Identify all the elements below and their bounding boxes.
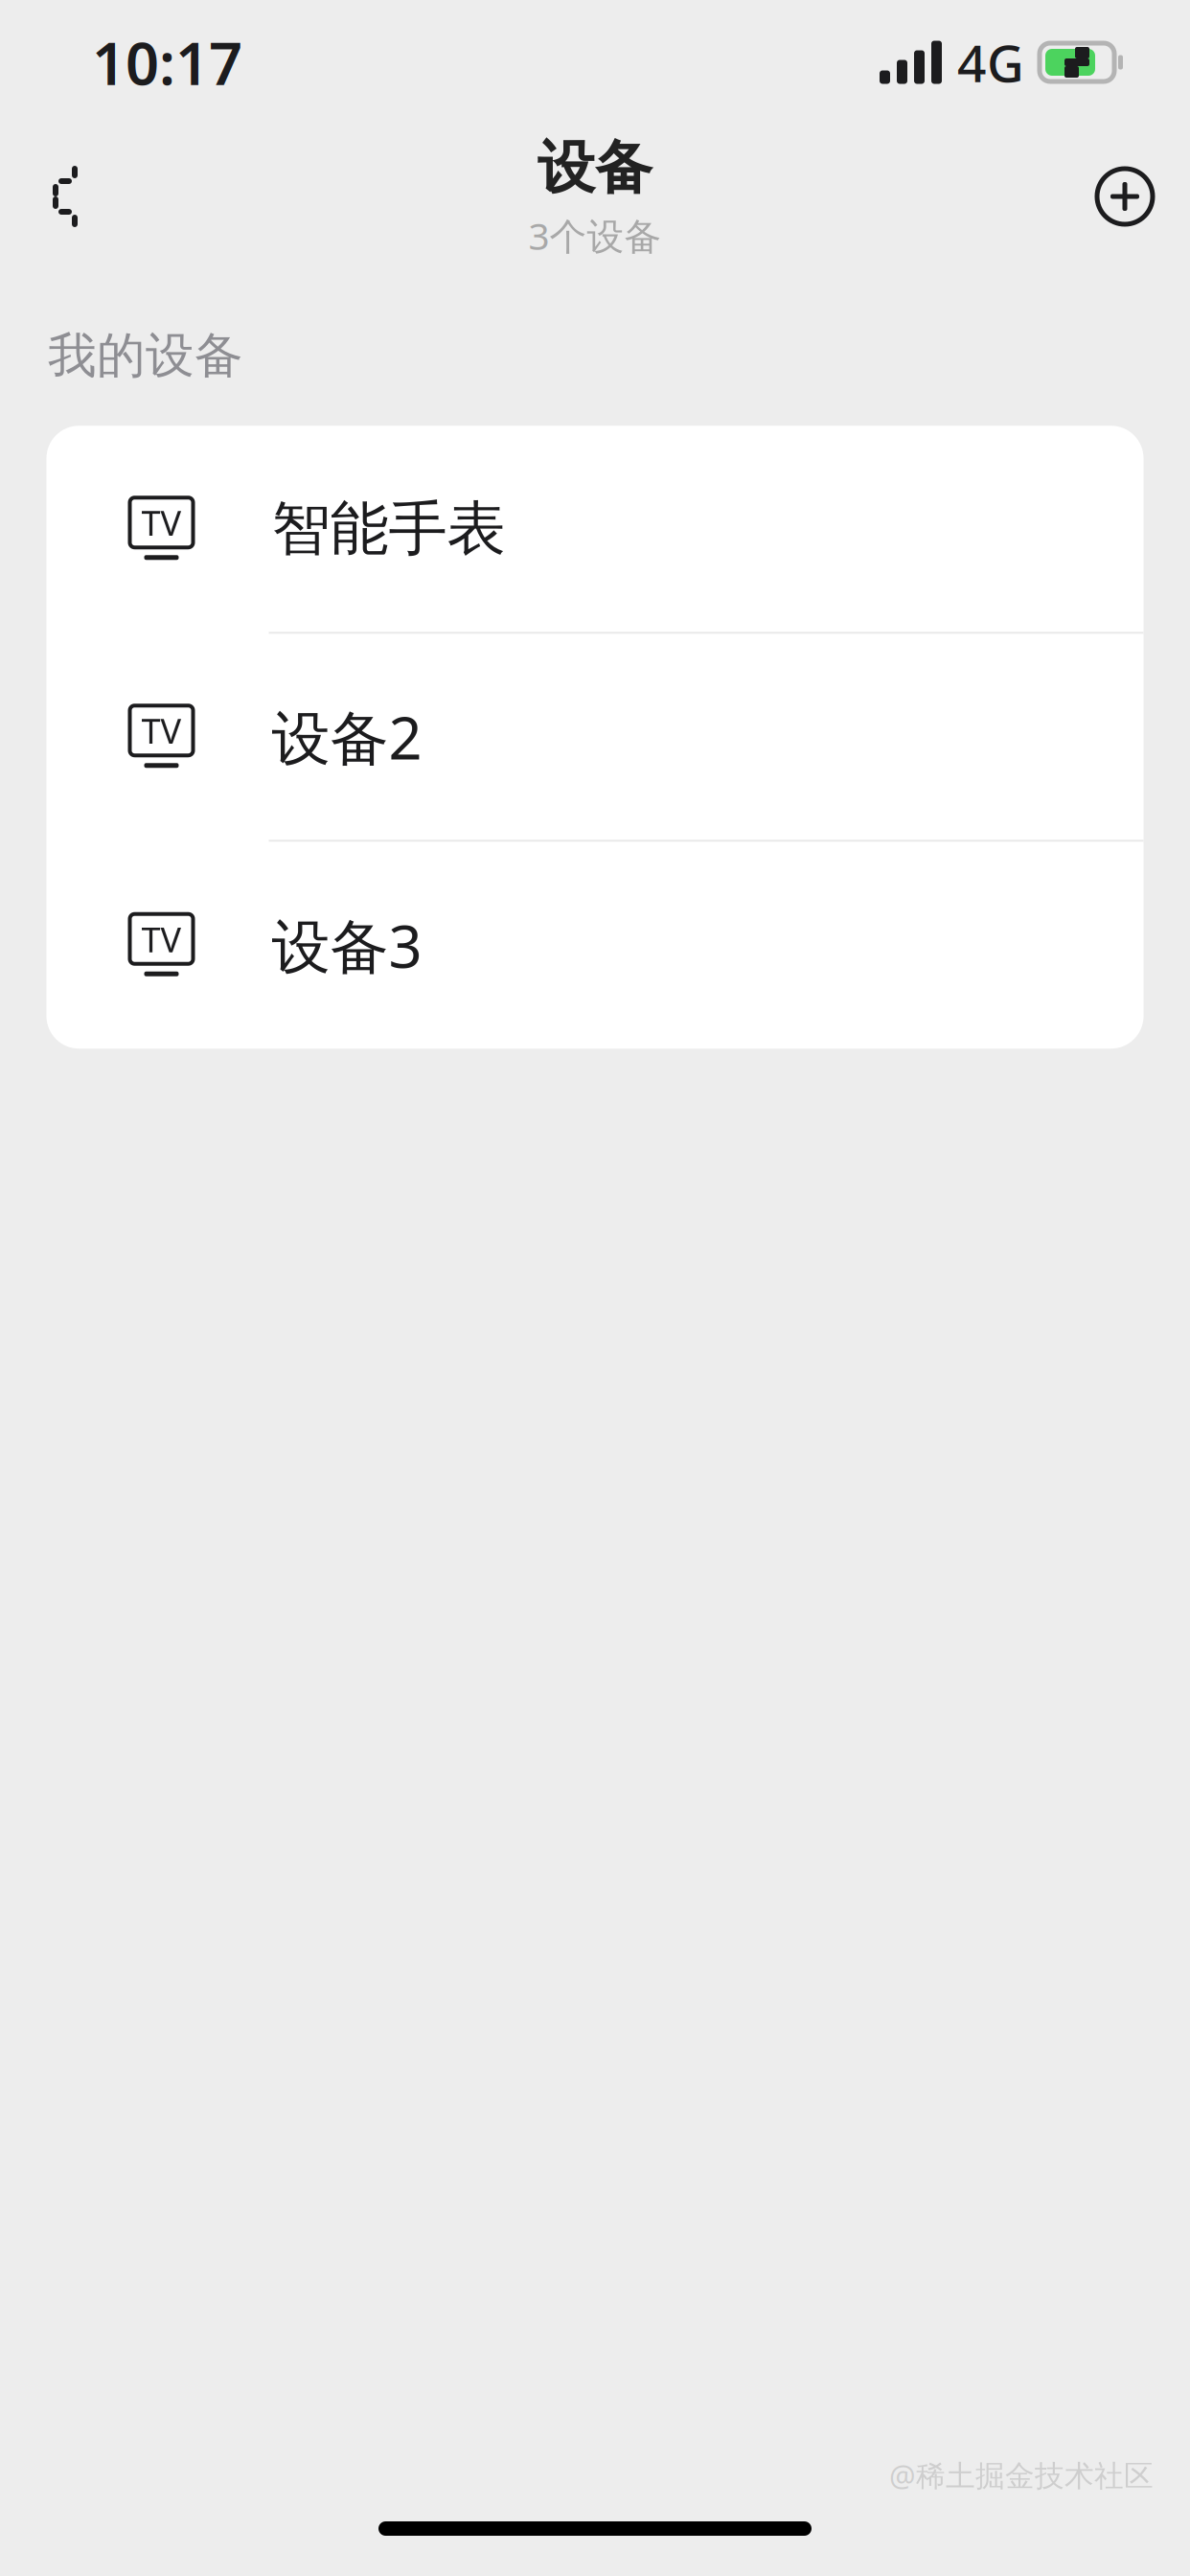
staticText: 设备 [538, 133, 652, 203]
button[interactable]: 添加设备 [1067, 139, 1182, 254]
staticText: @稀土掘金技术社区 [889, 2456, 1154, 2495]
button[interactable]: TV [46, 634, 1144, 842]
staticText: TV [141, 916, 182, 962]
staticText: 设备2 [272, 698, 422, 776]
staticText: 我的设备 [48, 326, 243, 385]
staticText: TV [141, 500, 182, 545]
staticText: 智能手表 [272, 493, 505, 565]
button[interactable]: TV [46, 842, 1144, 1049]
staticText: 10:17 [92, 23, 242, 101]
staticText: 3个设备 [528, 211, 662, 260]
staticText: TV [141, 708, 182, 753]
button[interactable]: 返回 [8, 139, 123, 254]
button[interactable]: TV [46, 426, 1144, 634]
staticText: 设备3 [272, 906, 422, 984]
staticText: 4G [957, 28, 1024, 96]
